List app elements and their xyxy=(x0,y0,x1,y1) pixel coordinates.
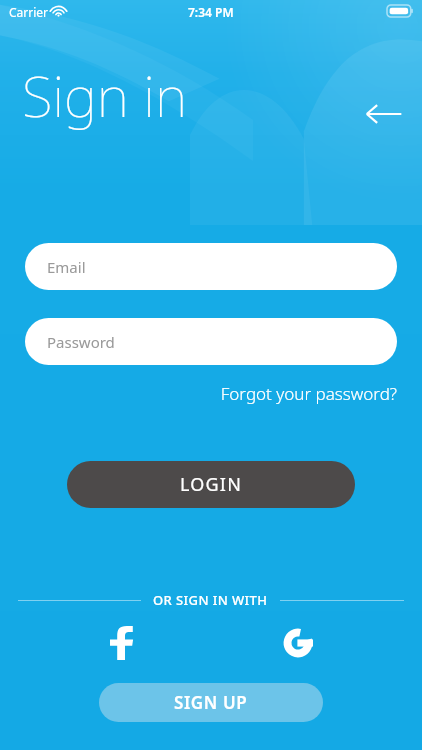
staticText: SIGN UP xyxy=(174,691,248,714)
button[interactable]: Email xyxy=(25,243,397,290)
staticText: 7:34 PM xyxy=(188,4,234,20)
staticText: Forgot your password? xyxy=(220,382,397,405)
button[interactable]: Sign in with Facebook xyxy=(96,617,148,669)
staticText: OR SIGN IN WITH xyxy=(153,591,268,609)
staticText: Carrier xyxy=(9,4,49,20)
staticText: Password xyxy=(47,332,115,352)
staticText: Sign in xyxy=(22,57,187,133)
staticText: LOGIN xyxy=(180,472,243,497)
button[interactable]: Back xyxy=(362,90,410,138)
button[interactable]: Forgot your password? xyxy=(195,380,397,406)
button[interactable]: Password xyxy=(25,318,397,365)
button[interactable]: Sign in with Google xyxy=(272,617,324,669)
button[interactable]: SIGN UP xyxy=(99,683,323,722)
button[interactable]: LOGIN xyxy=(67,461,355,508)
staticText: Email xyxy=(47,257,86,277)
